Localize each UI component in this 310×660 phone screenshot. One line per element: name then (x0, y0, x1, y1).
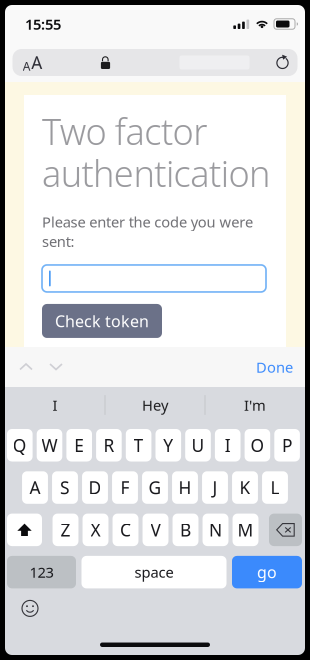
staticText: Q (13, 434, 27, 457)
staticText: Y (163, 434, 173, 457)
staticText: R (103, 434, 114, 457)
button[interactable]: G (142, 471, 168, 504)
staticText: Done (256, 357, 293, 377)
button[interactable]: T (126, 429, 151, 461)
staticText: I (225, 434, 231, 457)
staticText: J (212, 476, 217, 499)
button[interactable]: U (185, 429, 211, 461)
button[interactable]: Shift (7, 514, 42, 546)
button[interactable]: Next field (41, 352, 71, 382)
button[interactable]: I'm (205, 387, 304, 423)
staticText: T (134, 434, 144, 457)
staticText: P (282, 434, 292, 457)
staticText: K (239, 476, 250, 499)
staticText: C (120, 518, 131, 541)
staticText: 15:55 (25, 14, 61, 34)
staticText: I'm (244, 395, 266, 415)
staticText: O (250, 434, 264, 457)
button[interactable]: Previous field (11, 352, 41, 382)
button[interactable]: H (172, 471, 198, 504)
button[interactable]: Z (53, 514, 78, 546)
button[interactable]: I (215, 429, 240, 461)
button[interactable]: W (37, 429, 62, 461)
button[interactable]: Check token (42, 304, 162, 338)
staticText: U (191, 434, 204, 457)
button[interactable]: Done (256, 352, 305, 382)
staticText: N (209, 518, 222, 541)
button[interactable]: space (81, 556, 226, 588)
staticText: Check token (55, 310, 149, 331)
staticText: D (88, 476, 101, 499)
staticText: F (120, 476, 129, 499)
button[interactable]: N (203, 514, 228, 546)
button[interactable]: Page settings (12, 49, 52, 76)
staticText: B (180, 518, 191, 541)
staticText: A (29, 476, 40, 499)
button[interactable]: go (232, 556, 302, 588)
button[interactable]: Delete (269, 514, 302, 546)
button[interactable]: L (262, 471, 288, 504)
staticText: E (74, 434, 84, 457)
button[interactable]: V (143, 514, 168, 546)
staticText: X (90, 518, 100, 541)
button[interactable]: Y (155, 429, 181, 461)
button[interactable]: O (245, 429, 270, 461)
button[interactable]: S (52, 471, 78, 504)
button[interactable]: Hey (105, 387, 204, 423)
button[interactable]: K (232, 471, 258, 504)
button[interactable]: Reload (267, 49, 297, 76)
staticText: Please enter the code you were sent: (42, 212, 253, 251)
staticText: H (178, 476, 191, 499)
button[interactable]: P (274, 429, 300, 461)
staticText: V (150, 518, 160, 541)
button[interactable]: Q (7, 429, 33, 461)
button[interactable]: Emoji keyboard (15, 594, 45, 622)
staticText: go (257, 561, 277, 583)
staticText: 123 (29, 562, 53, 582)
staticText: Hey (142, 395, 168, 415)
staticText: A (31, 51, 42, 74)
button[interactable]: R (96, 429, 122, 461)
staticText: Z (60, 518, 70, 541)
staticText: authentication (42, 149, 270, 197)
button[interactable]: D (82, 471, 108, 504)
button[interactable]: F (112, 471, 138, 504)
button[interactable]: M (233, 514, 258, 546)
staticText: Two factor (42, 107, 207, 155)
button[interactable]: C (113, 514, 138, 546)
button[interactable]: I (5, 387, 104, 423)
staticText: I (52, 395, 57, 415)
staticText: S (60, 476, 70, 499)
button[interactable]: X (83, 514, 108, 546)
button[interactable]: A (22, 471, 48, 504)
button[interactable]: J (202, 471, 228, 504)
button[interactable]: E (66, 429, 92, 461)
staticText: L (270, 476, 279, 499)
staticText: A (23, 58, 31, 74)
button[interactable]: 123 (7, 556, 76, 588)
staticText: space (134, 562, 173, 582)
staticText: W (41, 434, 57, 457)
staticText: M (237, 518, 253, 541)
staticText: G (148, 476, 161, 499)
button[interactable]: B (173, 514, 198, 546)
